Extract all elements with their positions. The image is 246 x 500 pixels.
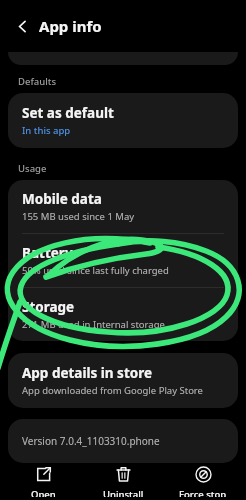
button[interactable]: Back [9,13,35,39]
button[interactable]: Uninstall app [86,463,160,500]
staticText: App details in store [22,364,153,382]
staticText: Usage [18,162,47,175]
staticText: In this app [22,124,71,137]
other: Uninstall app [115,466,132,483]
button[interactable]: Version 7.0.4_1103310.phone [8,419,238,463]
staticText: 50% used since last fully charged [22,264,169,277]
staticText: Battery [22,244,73,262]
staticText: Mobile data [22,190,102,208]
button[interactable]: Mobile data [8,180,238,233]
button[interactable]: Battery [8,234,238,287]
staticText: Storage [22,298,75,316]
other: Open app [35,466,52,483]
staticText: App downloaded from Google Play Store [22,384,203,397]
other: Force stop app [195,466,212,483]
staticText: Uninstall [103,488,144,497]
staticText: 155 MB used since 1 May [22,210,135,223]
staticText: App info [39,16,102,36]
button[interactable]: Set as default [8,93,238,148]
staticText: Force stop [179,488,227,497]
staticText: Open [31,488,56,497]
button[interactable]: Open app [6,463,80,500]
button[interactable]: Storage [8,288,238,341]
staticText: Defaults [18,75,57,88]
staticText: 271 MB used in Internal storage [22,318,165,331]
staticText: Version 7.0.4_1103310.phone [22,434,160,448]
button[interactable]: Force stop app [166,463,240,500]
staticText: Set as default [22,104,114,122]
button[interactable]: App details in store [8,353,238,408]
button[interactable] [8,52,238,65]
